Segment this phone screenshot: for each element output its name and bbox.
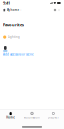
button[interactable]: More (57, 8, 61, 12)
staticText: Automation (24, 116, 40, 119)
button[interactable]: Automation (21, 112, 43, 119)
button[interactable]: Lighting (0, 27, 64, 39)
button[interactable]: Add accessory or scene (3, 53, 34, 56)
staticText: My home (6, 8, 19, 12)
button[interactable]: Add (53, 8, 57, 12)
button[interactable]: Home (0, 112, 21, 119)
staticText: Lighting (8, 35, 20, 39)
button[interactable]: My home (3, 8, 21, 12)
staticText: Favourites (3, 22, 24, 27)
staticText: Home (6, 116, 15, 119)
staticText: Discover (48, 116, 59, 119)
button[interactable]: Discover (43, 112, 64, 119)
staticText: 9:41 (3, 0, 10, 6)
staticText: Add accessory or scene (3, 53, 34, 56)
